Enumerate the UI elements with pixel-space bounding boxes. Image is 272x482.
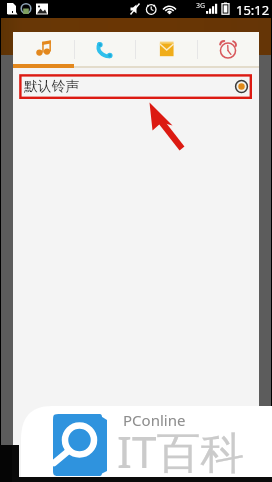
button[interactable]: Calls <box>74 32 135 68</box>
button[interactable]: Alarms <box>197 32 259 68</box>
staticText: 3G <box>196 1 206 11</box>
staticText: 默认铃声 <box>24 78 80 95</box>
button[interactable]: Messages <box>135 32 197 68</box>
button[interactable]: Ringtones <box>13 32 74 68</box>
staticText: IT百科 <box>117 421 245 481</box>
button[interactable]: 默认铃声 <box>13 68 259 101</box>
staticText: 15:12 <box>236 1 270 19</box>
staticText: PConline <box>123 410 186 430</box>
